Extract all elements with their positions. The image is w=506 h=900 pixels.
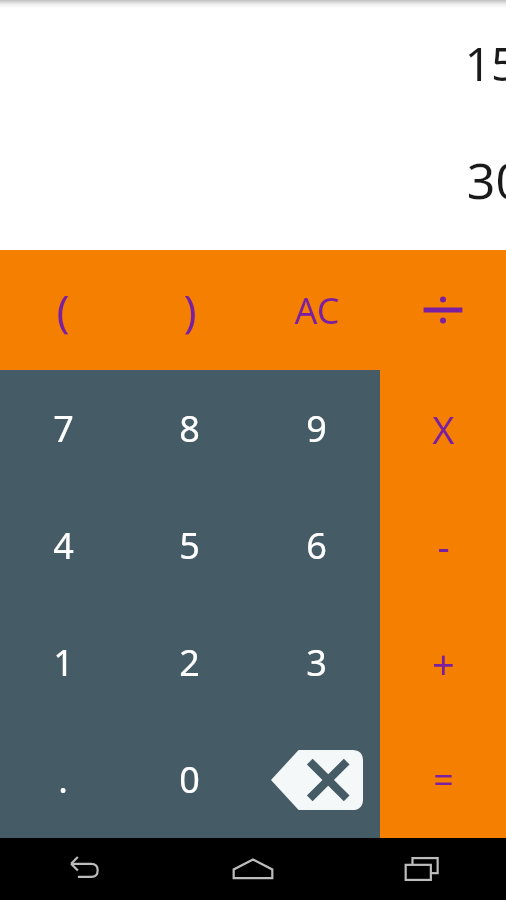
staticText: 15x2 <box>464 32 506 95</box>
button[interactable] <box>380 250 506 370</box>
button[interactable]: ( <box>0 250 126 370</box>
button[interactable]: 6 <box>253 487 380 604</box>
staticText: X <box>432 403 455 455</box>
staticText: . <box>58 755 68 804</box>
button[interactable]: = <box>380 721 506 838</box>
staticText: AC <box>294 286 340 335</box>
button[interactable]: Backspace <box>253 721 380 838</box>
button[interactable]: X <box>380 370 506 487</box>
button[interactable]: 9 <box>253 370 380 487</box>
button[interactable]: 1 <box>0 604 126 721</box>
button[interactable]: ) <box>126 250 253 370</box>
button[interactable]: . <box>0 721 126 838</box>
staticText: 0 <box>179 755 200 804</box>
button[interactable]: Back <box>0 838 168 900</box>
staticText: 30.0 <box>466 146 506 214</box>
staticText: 3 <box>306 638 327 687</box>
button[interactable]: 0 <box>126 721 253 838</box>
staticText: + <box>432 636 455 690</box>
staticText: 8 <box>179 404 200 453</box>
staticText: 9 <box>306 404 327 453</box>
button[interactable]: - <box>380 487 506 604</box>
button[interactable]: AC <box>253 250 380 370</box>
staticText: - <box>437 520 450 572</box>
staticText: ( <box>56 280 70 340</box>
button[interactable]: + <box>380 604 506 721</box>
staticText: 6 <box>306 521 327 570</box>
button[interactable]: 8 <box>126 370 253 487</box>
staticText: 4 <box>53 521 74 570</box>
button[interactable]: Home <box>168 838 337 900</box>
button[interactable]: Recent apps <box>337 838 506 900</box>
staticText: 7 <box>53 404 74 453</box>
button[interactable]: 5 <box>126 487 253 604</box>
button[interactable]: 2 <box>126 604 253 721</box>
button[interactable]: 7 <box>0 370 126 487</box>
button[interactable]: 4 <box>0 487 126 604</box>
staticText: = <box>433 755 454 804</box>
button[interactable]: 3 <box>253 604 380 721</box>
staticText: 2 <box>179 638 200 687</box>
staticText: ) <box>183 280 197 340</box>
staticText: 5 <box>179 521 200 570</box>
staticText: 1 <box>53 638 74 687</box>
